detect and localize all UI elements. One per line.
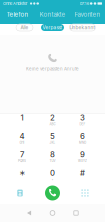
button[interactable]: Tastenfeld <box>78 186 92 200</box>
staticText: Keine verpassten Anrufe <box>26 66 79 72</box>
staticText: 07:16 <box>80 1 89 6</box>
button[interactable]: 3 <box>67 111 97 128</box>
staticText: JKL <box>49 141 55 144</box>
button[interactable]: 1 <box>7 111 37 128</box>
staticText: Verpasst <box>42 25 62 30</box>
staticText: 6 <box>80 131 85 141</box>
staticText: 3 <box>80 113 85 122</box>
staticText: Unbekannt <box>69 25 95 30</box>
button[interactable]: Anrufen <box>45 185 60 200</box>
button[interactable]: Telefon <box>0 7 35 21</box>
button[interactable]: Kontakte <box>13 186 27 200</box>
staticText: Alle <box>20 25 28 30</box>
button[interactable]: 5 <box>37 129 67 146</box>
staticText: 7 <box>20 150 24 159</box>
staticText: + <box>51 178 53 181</box>
staticText: 9 <box>80 150 85 159</box>
button[interactable]: 9 <box>67 148 97 165</box>
staticText: Telefon <box>6 11 28 18</box>
button[interactable]: Startbildschirm <box>45 206 59 220</box>
staticText: 5 <box>50 131 55 141</box>
button[interactable]: Alle <box>16 24 33 31</box>
button[interactable]: 8 <box>37 148 67 165</box>
button[interactable]: Zurück <box>22 206 36 220</box>
button[interactable]: Verpasst <box>41 24 64 31</box>
button[interactable]: 4 <box>7 129 37 146</box>
staticText: TUV <box>49 159 55 163</box>
staticText: WXYZ <box>78 159 87 163</box>
staticText: DEF <box>79 122 85 126</box>
staticText: ABC <box>49 122 55 126</box>
button[interactable]: 6 <box>67 129 97 146</box>
button[interactable]: Favoriten <box>70 7 105 21</box>
staticText: 0 <box>50 168 55 178</box>
button[interactable]: 2 <box>37 111 67 128</box>
staticText: ∗ <box>19 168 25 177</box>
staticText: GHI <box>19 141 24 144</box>
button[interactable]: ∗ <box>7 166 37 183</box>
staticText: # <box>80 168 85 178</box>
staticText: MNO <box>79 141 86 144</box>
button[interactable]: # <box>67 166 97 183</box>
button[interactable]: Letzte Apps <box>69 206 83 220</box>
button[interactable]: Kontakte <box>35 7 70 21</box>
staticText: Ohne Anbieter <box>3 1 28 6</box>
staticText: PQRS <box>18 159 26 163</box>
staticText: 8 <box>50 150 55 159</box>
staticText: 2 <box>50 113 55 122</box>
button[interactable]: 0 <box>37 166 67 183</box>
button[interactable]: Unbekannt <box>69 24 95 31</box>
staticText: Favoriten <box>74 11 100 18</box>
button[interactable]: 7 <box>7 148 37 165</box>
staticText: 4 <box>19 131 24 141</box>
staticText: 1 <box>20 113 23 122</box>
staticText: Kontakte <box>39 11 65 18</box>
